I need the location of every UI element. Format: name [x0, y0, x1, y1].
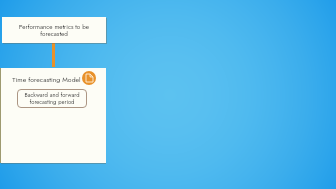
staticText: Time forecasting Model [12, 75, 81, 85]
button[interactable]: Performance metrics to be forecasted [2, 17, 106, 43]
button[interactable]: Open model document [82, 71, 96, 85]
staticText: Backward and forward forecasting period [18, 91, 86, 106]
staticText: Performance metrics to be forecasted [4, 22, 104, 39]
button[interactable]: Time forecasting Model [0, 68, 106, 163]
button[interactable]: Backward and forward forecasting period [17, 89, 87, 108]
